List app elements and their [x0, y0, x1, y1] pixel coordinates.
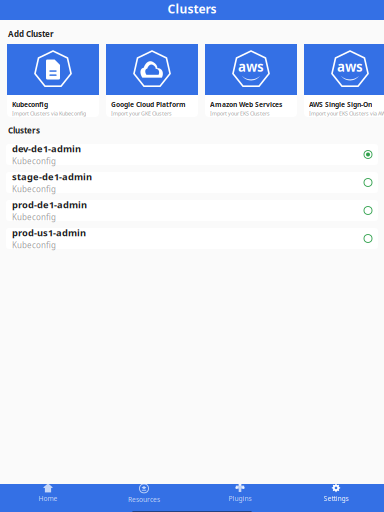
staticText: Add Cluster: [8, 29, 54, 39]
staticText: Kubeconfig: [12, 240, 56, 250]
button[interactable]: aws: [205, 44, 297, 117]
staticText: Kubeconfig: [12, 184, 56, 194]
button[interactable]: dev-de1-admin: [6, 144, 378, 165]
staticText: Import your EKS Clusters via AWS: [309, 110, 384, 117]
staticText: Kubeconfig: [12, 156, 56, 166]
staticText: Google Cloud Platform: [111, 100, 186, 109]
button[interactable]: prod-us1-admin: [6, 228, 378, 249]
staticText: Kubeconfig: [12, 100, 48, 109]
staticText: Plugins: [228, 494, 251, 503]
staticText: Clusters: [167, 1, 216, 17]
button[interactable]: Home: [0, 483, 96, 503]
button[interactable]: Settings: [288, 483, 384, 503]
staticText: Clusters: [8, 125, 40, 136]
staticText: Home: [38, 494, 57, 503]
staticText: aws: [238, 58, 264, 75]
staticText: AWS Single Sign-On: [309, 100, 372, 109]
staticText: Import your GKE Clusters: [111, 110, 172, 117]
button[interactable]: Resources: [96, 483, 192, 503]
button[interactable]: stage-de1-admin: [6, 172, 378, 193]
button[interactable]: prod-de1-admin: [6, 200, 378, 221]
button[interactable]: Plugins: [192, 483, 288, 503]
staticText: dev-de1-admin: [12, 142, 81, 155]
staticText: prod-us1-admin: [12, 226, 86, 239]
staticText: Resources: [128, 495, 160, 504]
staticText: Amazon Web Services: [210, 100, 282, 109]
staticText: prod-de1-admin: [12, 198, 87, 211]
button[interactable]: aws: [304, 44, 384, 117]
staticText: aws: [337, 58, 363, 75]
staticText: Import Clusters via Kubeconfig: [12, 110, 86, 117]
staticText: Kubeconfig: [12, 212, 56, 222]
staticText: stage-de1-admin: [12, 170, 92, 183]
button[interactable]: Google Cloud Platform: [106, 44, 198, 117]
staticText: Import your EKS Clusters: [210, 110, 270, 117]
staticText: Settings: [323, 494, 348, 503]
button[interactable]: Kubeconfig: [7, 44, 99, 117]
